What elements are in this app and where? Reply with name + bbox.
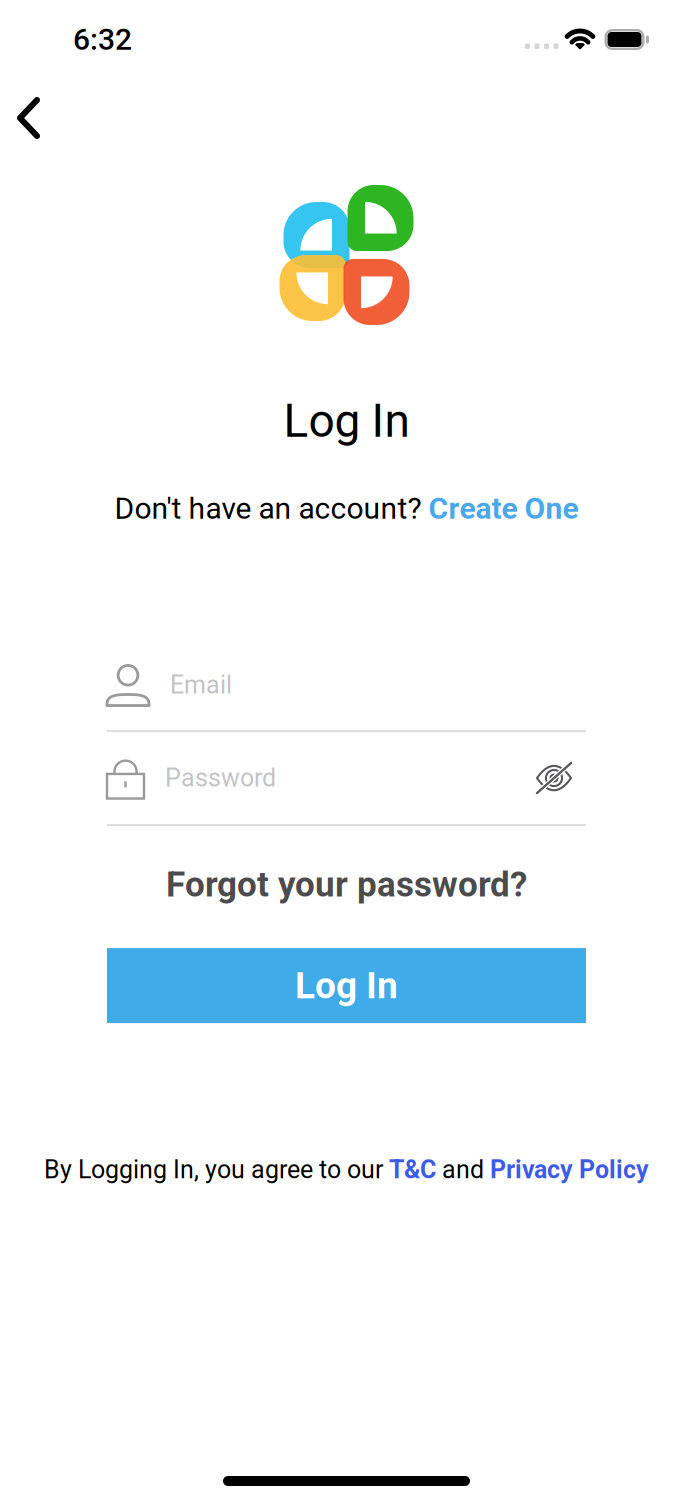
button[interactable]: Back — [0, 70, 63, 160]
staticText: 6:32 — [73, 22, 132, 57]
button[interactable]: Forgot your password? — [166, 856, 527, 913]
button[interactable]: Privacy Policy — [490, 1155, 649, 1184]
staticText: Privacy Policy — [490, 1155, 649, 1184]
button[interactable]: T&C — [389, 1155, 436, 1184]
button[interactable]: Create One — [428, 491, 578, 526]
staticText: By Logging In, you agree to our — [44, 1155, 389, 1184]
staticText: T&C — [389, 1155, 436, 1184]
button[interactable]: Log In — [107, 948, 586, 1023]
staticText: and — [436, 1155, 490, 1184]
staticText: Log In — [295, 964, 398, 1007]
staticText: Email — [170, 670, 232, 700]
staticText: Create One — [428, 491, 578, 526]
staticText: Don't have an account? — [114, 491, 428, 526]
staticText: Log In — [283, 394, 409, 448]
button[interactable]: Show password — [522, 751, 586, 805]
staticText: Forgot your password? — [166, 864, 527, 905]
staticText: Password — [165, 763, 276, 793]
